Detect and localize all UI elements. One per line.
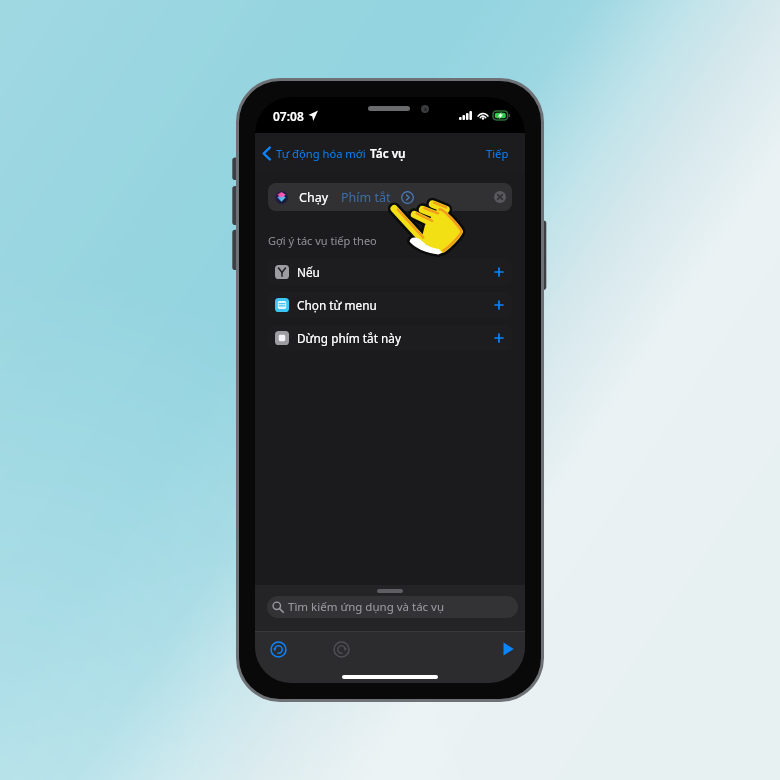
button[interactable]: Xóa tác vụ [494, 191, 506, 203]
button[interactable]: Chạy phím tắt [500, 641, 516, 657]
button[interactable]: Dừng phím tắt này [268, 325, 512, 351]
button[interactable]: Tự động hóa mới [262, 146, 366, 161]
button[interactable]: Thêm tác vụ [493, 299, 505, 311]
button[interactable]: Làm lại [333, 641, 350, 658]
staticText: Tự động hóa mới [276, 146, 366, 161]
staticText: Dừng phím tắt này [297, 330, 401, 346]
button[interactable]: Hoàn tác [270, 641, 287, 658]
button[interactable]: Chạy [268, 183, 512, 211]
staticText: Tìm kiếm ứng dụng và tác vụ [288, 599, 445, 615]
button[interactable]: Tìm kiếm ứng dụng và tác vụ [267, 596, 518, 618]
staticText: Tác vụ [370, 145, 406, 161]
staticText: Chạy [299, 189, 329, 206]
button[interactable]: Thêm tác vụ [493, 332, 505, 344]
staticText: Phím tắt [341, 189, 391, 206]
staticText: 07:08 [273, 108, 304, 124]
staticText: Gợi ý tác vụ tiếp theo [268, 233, 377, 248]
button[interactable]: Tiếp [486, 146, 509, 161]
button[interactable]: Nếu [268, 259, 512, 285]
button[interactable]: Thêm tác vụ [493, 266, 505, 278]
staticText: Nếu [297, 264, 320, 280]
staticText: Chọn từ menu [297, 297, 377, 313]
button[interactable]: Chọn từ menu [268, 292, 512, 318]
